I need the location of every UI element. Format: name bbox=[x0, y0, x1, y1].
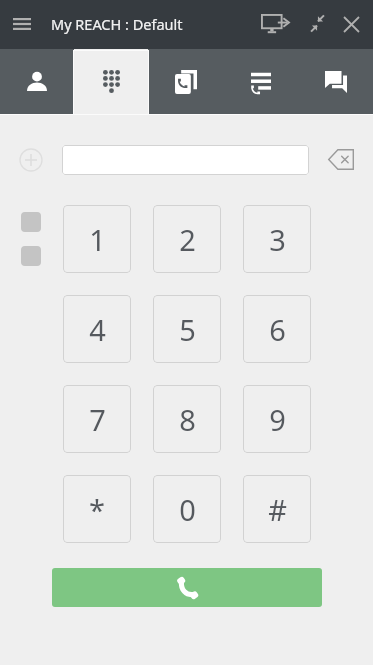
button[interactable] bbox=[62, 145, 309, 175]
button[interactable]: Cast screen bbox=[255, 7, 295, 41]
button[interactable]: Menu bbox=[6, 8, 38, 40]
staticText: * bbox=[89, 490, 105, 529]
button[interactable]: 3 bbox=[243, 205, 311, 273]
button[interactable]: Close bbox=[334, 7, 368, 41]
button[interactable]: Contacts bbox=[0, 49, 74, 114]
button[interactable]: Minimize bbox=[302, 8, 333, 39]
button[interactable]: Messages bbox=[298, 49, 373, 114]
button[interactable]: * bbox=[63, 475, 131, 543]
staticText: My REACH : Default bbox=[51, 14, 183, 34]
staticText: # bbox=[268, 490, 287, 529]
staticText: 2 bbox=[179, 220, 196, 259]
staticText: 7 bbox=[89, 400, 106, 439]
button[interactable]: 0 bbox=[153, 475, 221, 543]
staticText: 1 bbox=[89, 220, 106, 259]
button[interactable]: Option 2 bbox=[21, 246, 41, 266]
button[interactable]: # bbox=[243, 475, 311, 543]
button[interactable]: Dialpad bbox=[74, 49, 148, 114]
button[interactable]: Call bbox=[52, 568, 322, 607]
button[interactable]: Add contact bbox=[19, 148, 43, 172]
button[interactable]: 6 bbox=[243, 295, 311, 363]
button[interactable]: 8 bbox=[153, 385, 221, 453]
button[interactable]: Recent calls bbox=[148, 49, 223, 114]
button[interactable]: 1 bbox=[63, 205, 131, 273]
button[interactable]: Backspace bbox=[328, 149, 354, 170]
staticText: 8 bbox=[179, 400, 196, 439]
button[interactable]: 5 bbox=[153, 295, 221, 363]
staticText: 6 bbox=[269, 310, 286, 349]
button[interactable]: 4 bbox=[63, 295, 131, 363]
staticText: 5 bbox=[179, 310, 196, 349]
button[interactable]: Call log bbox=[223, 49, 298, 114]
button[interactable]: 2 bbox=[153, 205, 221, 273]
staticText: 9 bbox=[269, 400, 286, 439]
button[interactable]: Option 1 bbox=[21, 212, 41, 232]
staticText: 0 bbox=[179, 490, 196, 529]
button[interactable]: 9 bbox=[243, 385, 311, 453]
staticText: 3 bbox=[269, 220, 286, 259]
button[interactable]: 7 bbox=[63, 385, 131, 453]
staticText: 4 bbox=[89, 310, 106, 349]
